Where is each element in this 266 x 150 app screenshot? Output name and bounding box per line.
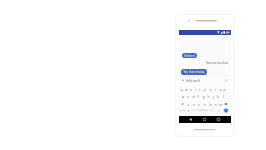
- staticText: a: [182, 94, 184, 99]
- staticText: How are you doing?: [206, 61, 228, 64]
- button[interactable]: j: [211, 94, 215, 99]
- staticText: i: [215, 87, 216, 92]
- button[interactable]: e: [189, 87, 193, 92]
- staticText: o: [219, 87, 222, 92]
- button[interactable]: Home: [201, 116, 208, 123]
- staticText: p: [223, 87, 226, 92]
- staticText: e: [190, 87, 192, 92]
- staticText: t: [199, 87, 201, 92]
- staticText: s: [187, 94, 189, 99]
- button[interactable]: k: [216, 94, 220, 99]
- staticText: r: [195, 87, 197, 92]
- button[interactable]: Hi there!: [182, 53, 197, 58]
- button[interactable]: Yes, that is today: [181, 69, 207, 75]
- button[interactable]: Back: [187, 116, 194, 123]
- button[interactable]: s: [186, 94, 190, 99]
- button[interactable]: How are you doing?: [206, 61, 228, 64]
- staticText: j: [213, 94, 214, 99]
- staticText: u: [209, 87, 212, 92]
- button[interactable]: h: [206, 94, 210, 99]
- button[interactable]: l: [221, 94, 225, 99]
- staticText: l: [223, 94, 224, 99]
- staticText: c: [198, 102, 200, 107]
- staticText: q: [180, 87, 183, 92]
- staticText: g: [202, 94, 205, 99]
- staticText: f: [197, 94, 199, 99]
- staticText: m: [219, 102, 223, 107]
- button[interactable]: g: [201, 94, 205, 99]
- staticText: v: [204, 102, 206, 107]
- button[interactable]: n: [213, 102, 217, 107]
- button[interactable]: b: [208, 102, 212, 107]
- button[interactable]: Recents: [215, 116, 222, 123]
- staticText: b: [209, 102, 212, 107]
- button[interactable]: q: [179, 87, 183, 92]
- staticText: k: [217, 94, 219, 99]
- button[interactable]: v: [203, 102, 207, 107]
- button[interactable]: o: [218, 87, 222, 92]
- button[interactable]: p: [222, 87, 226, 92]
- button[interactable]: f: [196, 94, 200, 99]
- staticText: Hello world: [186, 79, 200, 83]
- staticText: y: [204, 87, 206, 92]
- staticText: Hi there!: [184, 54, 195, 58]
- button[interactable]: r: [194, 87, 198, 92]
- button[interactable]: m: [219, 102, 223, 107]
- staticText: w: [185, 87, 188, 92]
- button[interactable]: w: [184, 87, 188, 92]
- staticText: d: [192, 94, 195, 99]
- staticText: ?123: [180, 108, 186, 111]
- button[interactable]: z: [186, 102, 190, 107]
- staticText: z: [187, 102, 189, 107]
- button[interactable]: u: [208, 87, 212, 92]
- staticText: n: [214, 102, 217, 107]
- button[interactable]: x: [192, 102, 196, 107]
- button[interactable]: i: [213, 87, 217, 92]
- staticText: x: [193, 102, 195, 107]
- button[interactable]: c: [197, 102, 201, 107]
- button[interactable]: t: [198, 87, 202, 92]
- staticText: Yes, that is today: [183, 70, 205, 74]
- button[interactable]: a: [181, 94, 185, 99]
- button[interactable]: d: [191, 94, 195, 99]
- button[interactable]: y: [203, 87, 207, 92]
- staticText: h: [207, 94, 210, 99]
